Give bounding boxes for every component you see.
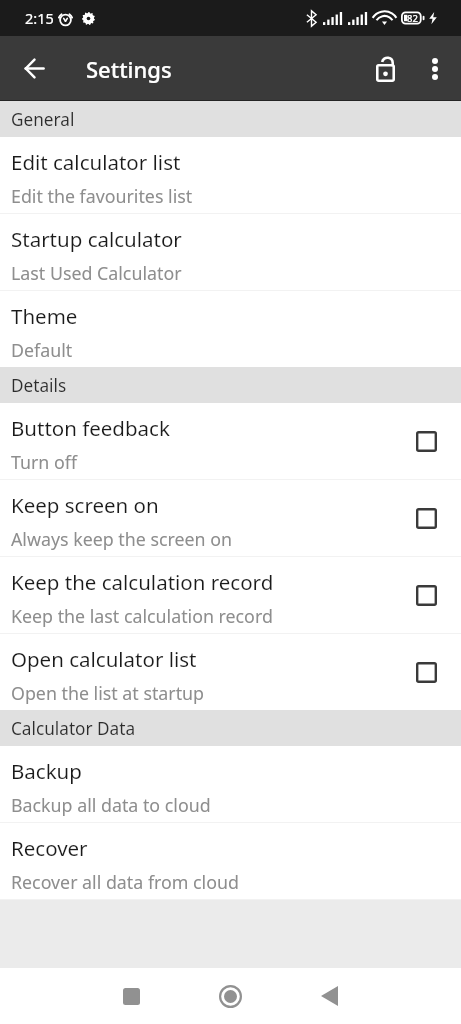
button[interactable]: Recent apps	[107, 972, 155, 1020]
staticText: Last Used Calculator	[11, 261, 182, 285]
button[interactable]: Theme	[0, 291, 461, 367]
button[interactable]: Edit calculator list	[0, 137, 461, 213]
staticText: Open the list at startup	[11, 681, 205, 705]
button[interactable]: Button feedback	[0, 403, 461, 479]
staticText: Backup all data to cloud	[11, 793, 211, 817]
staticText: Backup	[11, 757, 82, 785]
staticText: Button feedback	[11, 414, 170, 442]
button[interactable]: Home	[206, 972, 254, 1020]
staticText: Settings	[86, 54, 172, 84]
button[interactable]: Keep screen on	[0, 480, 461, 556]
staticText: Open calculator list	[11, 645, 197, 673]
staticText: Keep the calculation record	[11, 568, 274, 596]
staticText: Edit the favourites list	[11, 184, 193, 208]
staticText: Calculator Data	[11, 717, 136, 740]
button[interactable]: Keep the calculation record	[0, 557, 461, 633]
staticText: Edit calculator list	[11, 148, 181, 176]
staticText: Default	[11, 338, 73, 362]
button[interactable]: Recover	[0, 823, 461, 899]
staticText: General	[11, 108, 75, 131]
button[interactable]: Startup calculator	[0, 214, 461, 290]
button[interactable]: Backup	[0, 746, 461, 822]
staticText: Recover all data from cloud	[11, 870, 239, 894]
staticText: Recover	[11, 834, 88, 862]
staticText: Startup calculator	[11, 225, 182, 253]
button[interactable]: Unlock	[357, 43, 409, 95]
staticText: Keep the last calculation record	[11, 604, 273, 628]
button[interactable]: Open calculator list	[0, 634, 461, 710]
button[interactable]: Back	[305, 972, 353, 1020]
staticText: 82	[407, 12, 418, 25]
button[interactable]: Back	[0, 36, 58, 101]
staticText: Keep screen on	[11, 491, 159, 519]
staticText: Theme	[11, 302, 78, 330]
staticText: 2:15	[25, 8, 54, 28]
button[interactable]: More options	[409, 43, 461, 95]
staticText: Always keep the screen on	[11, 527, 232, 551]
staticText: Details	[11, 374, 67, 397]
staticText: Turn off	[11, 450, 77, 474]
